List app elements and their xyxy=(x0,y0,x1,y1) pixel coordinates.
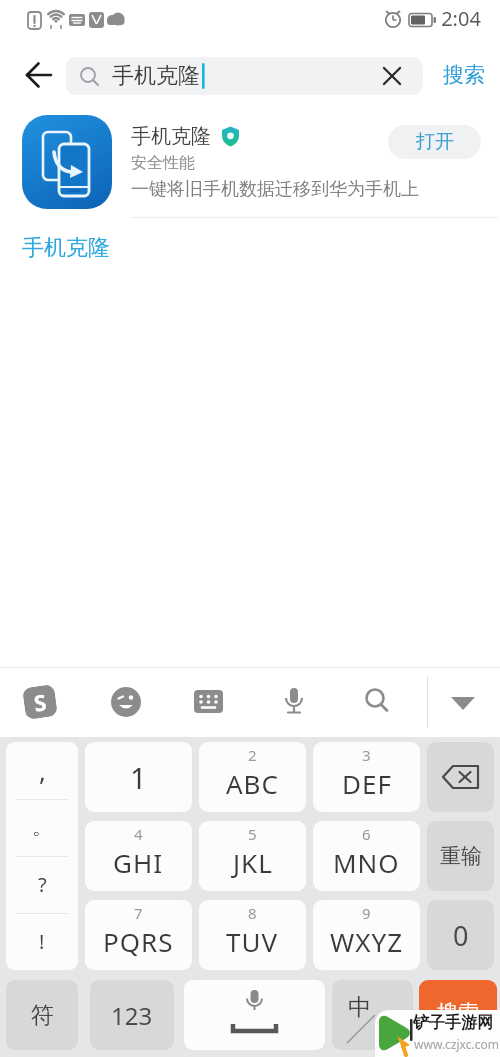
staticText: WXYZ xyxy=(330,924,404,959)
button[interactable] xyxy=(22,115,112,209)
button[interactable] xyxy=(110,686,142,718)
staticText: PQRS xyxy=(103,924,174,959)
button[interactable]: 5 xyxy=(199,821,306,891)
staticText: 手机克隆 xyxy=(131,124,211,149)
staticText: ABC xyxy=(226,766,279,801)
staticText: 符 xyxy=(31,1001,54,1030)
staticText: S xyxy=(32,686,49,718)
staticText: 手机克隆 xyxy=(22,234,110,262)
button[interactable]: 搜索 xyxy=(419,980,497,1050)
button[interactable]: 中 xyxy=(332,980,413,1050)
button[interactable]: 符 xyxy=(6,980,78,1050)
staticText: 2 xyxy=(248,745,257,765)
button[interactable] xyxy=(448,690,480,714)
staticText: MNO xyxy=(333,845,400,880)
button[interactable]: 打开 xyxy=(388,125,481,159)
button[interactable]: , xyxy=(6,742,78,970)
staticText: ! xyxy=(39,928,45,955)
staticText: TUV xyxy=(226,924,279,959)
button[interactable]: 搜索 xyxy=(428,55,500,95)
button[interactable] xyxy=(281,686,307,718)
button[interactable] xyxy=(184,980,325,1050)
button[interactable]: 6 xyxy=(313,821,420,891)
button[interactable]: 重输 xyxy=(427,821,494,891)
button[interactable]: 手机克隆 xyxy=(66,57,423,95)
staticText: www.czjxc.com xyxy=(414,1036,499,1052)
button[interactable] xyxy=(194,690,224,714)
button[interactable] xyxy=(427,742,494,812)
staticText: 手机克隆 xyxy=(112,62,200,90)
staticText: 安全性能 xyxy=(131,153,195,173)
staticText: 7 xyxy=(134,903,143,923)
staticText: 2:04 xyxy=(441,5,481,32)
staticText: 3 xyxy=(362,745,371,765)
button[interactable]: S xyxy=(22,684,58,720)
button[interactable]: 手机克隆 xyxy=(22,234,114,262)
staticText: 。 xyxy=(32,815,52,840)
staticText: 5 xyxy=(248,824,257,844)
button[interactable]: 2 xyxy=(199,742,306,812)
staticText: 一键将旧手机数据迁移到华为手机上 xyxy=(131,178,419,201)
staticText: 重输 xyxy=(440,843,482,869)
staticText: 1 xyxy=(130,758,147,797)
button[interactable] xyxy=(14,55,58,95)
staticText: 搜索 xyxy=(437,1000,479,1026)
button[interactable]: 123 xyxy=(90,980,174,1050)
staticText: GHI xyxy=(113,845,164,880)
button[interactable] xyxy=(362,686,392,716)
staticText: JKL xyxy=(233,845,273,880)
staticText: 搜索 xyxy=(443,62,485,88)
staticText: 123 xyxy=(111,999,153,1032)
button[interactable]: 8 xyxy=(199,900,306,970)
button[interactable]: 7 xyxy=(85,900,192,970)
staticText: 9 xyxy=(362,903,371,923)
button[interactable]: 0 xyxy=(427,900,494,970)
staticText: 中 xyxy=(348,993,371,1022)
staticText: 8 xyxy=(248,903,257,923)
button[interactable]: 3 xyxy=(313,742,420,812)
button[interactable]: 9 xyxy=(313,900,420,970)
staticText: ? xyxy=(38,871,47,898)
staticText: 打开 xyxy=(416,130,454,154)
staticText: DEF xyxy=(342,766,392,801)
staticText: 4 xyxy=(134,824,143,844)
staticText: , xyxy=(39,753,46,788)
staticText: 6 xyxy=(362,824,371,844)
staticText: 铲子手游网 xyxy=(413,1013,493,1033)
staticText: 0 xyxy=(453,917,469,954)
button[interactable]: 4 xyxy=(85,821,192,891)
button[interactable]: 1 xyxy=(85,742,192,812)
